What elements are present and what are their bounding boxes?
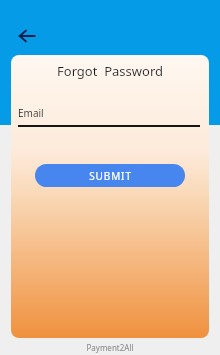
button[interactable]: Email	[18, 106, 200, 127]
staticText: Forgot Password	[11, 62, 209, 80]
staticText: Payment2All	[86, 342, 134, 353]
staticText: Email	[18, 106, 44, 120]
button[interactable]: Back	[11, 20, 43, 52]
staticText: SUBMIT	[89, 169, 132, 183]
button[interactable]: SUBMIT	[35, 164, 185, 187]
